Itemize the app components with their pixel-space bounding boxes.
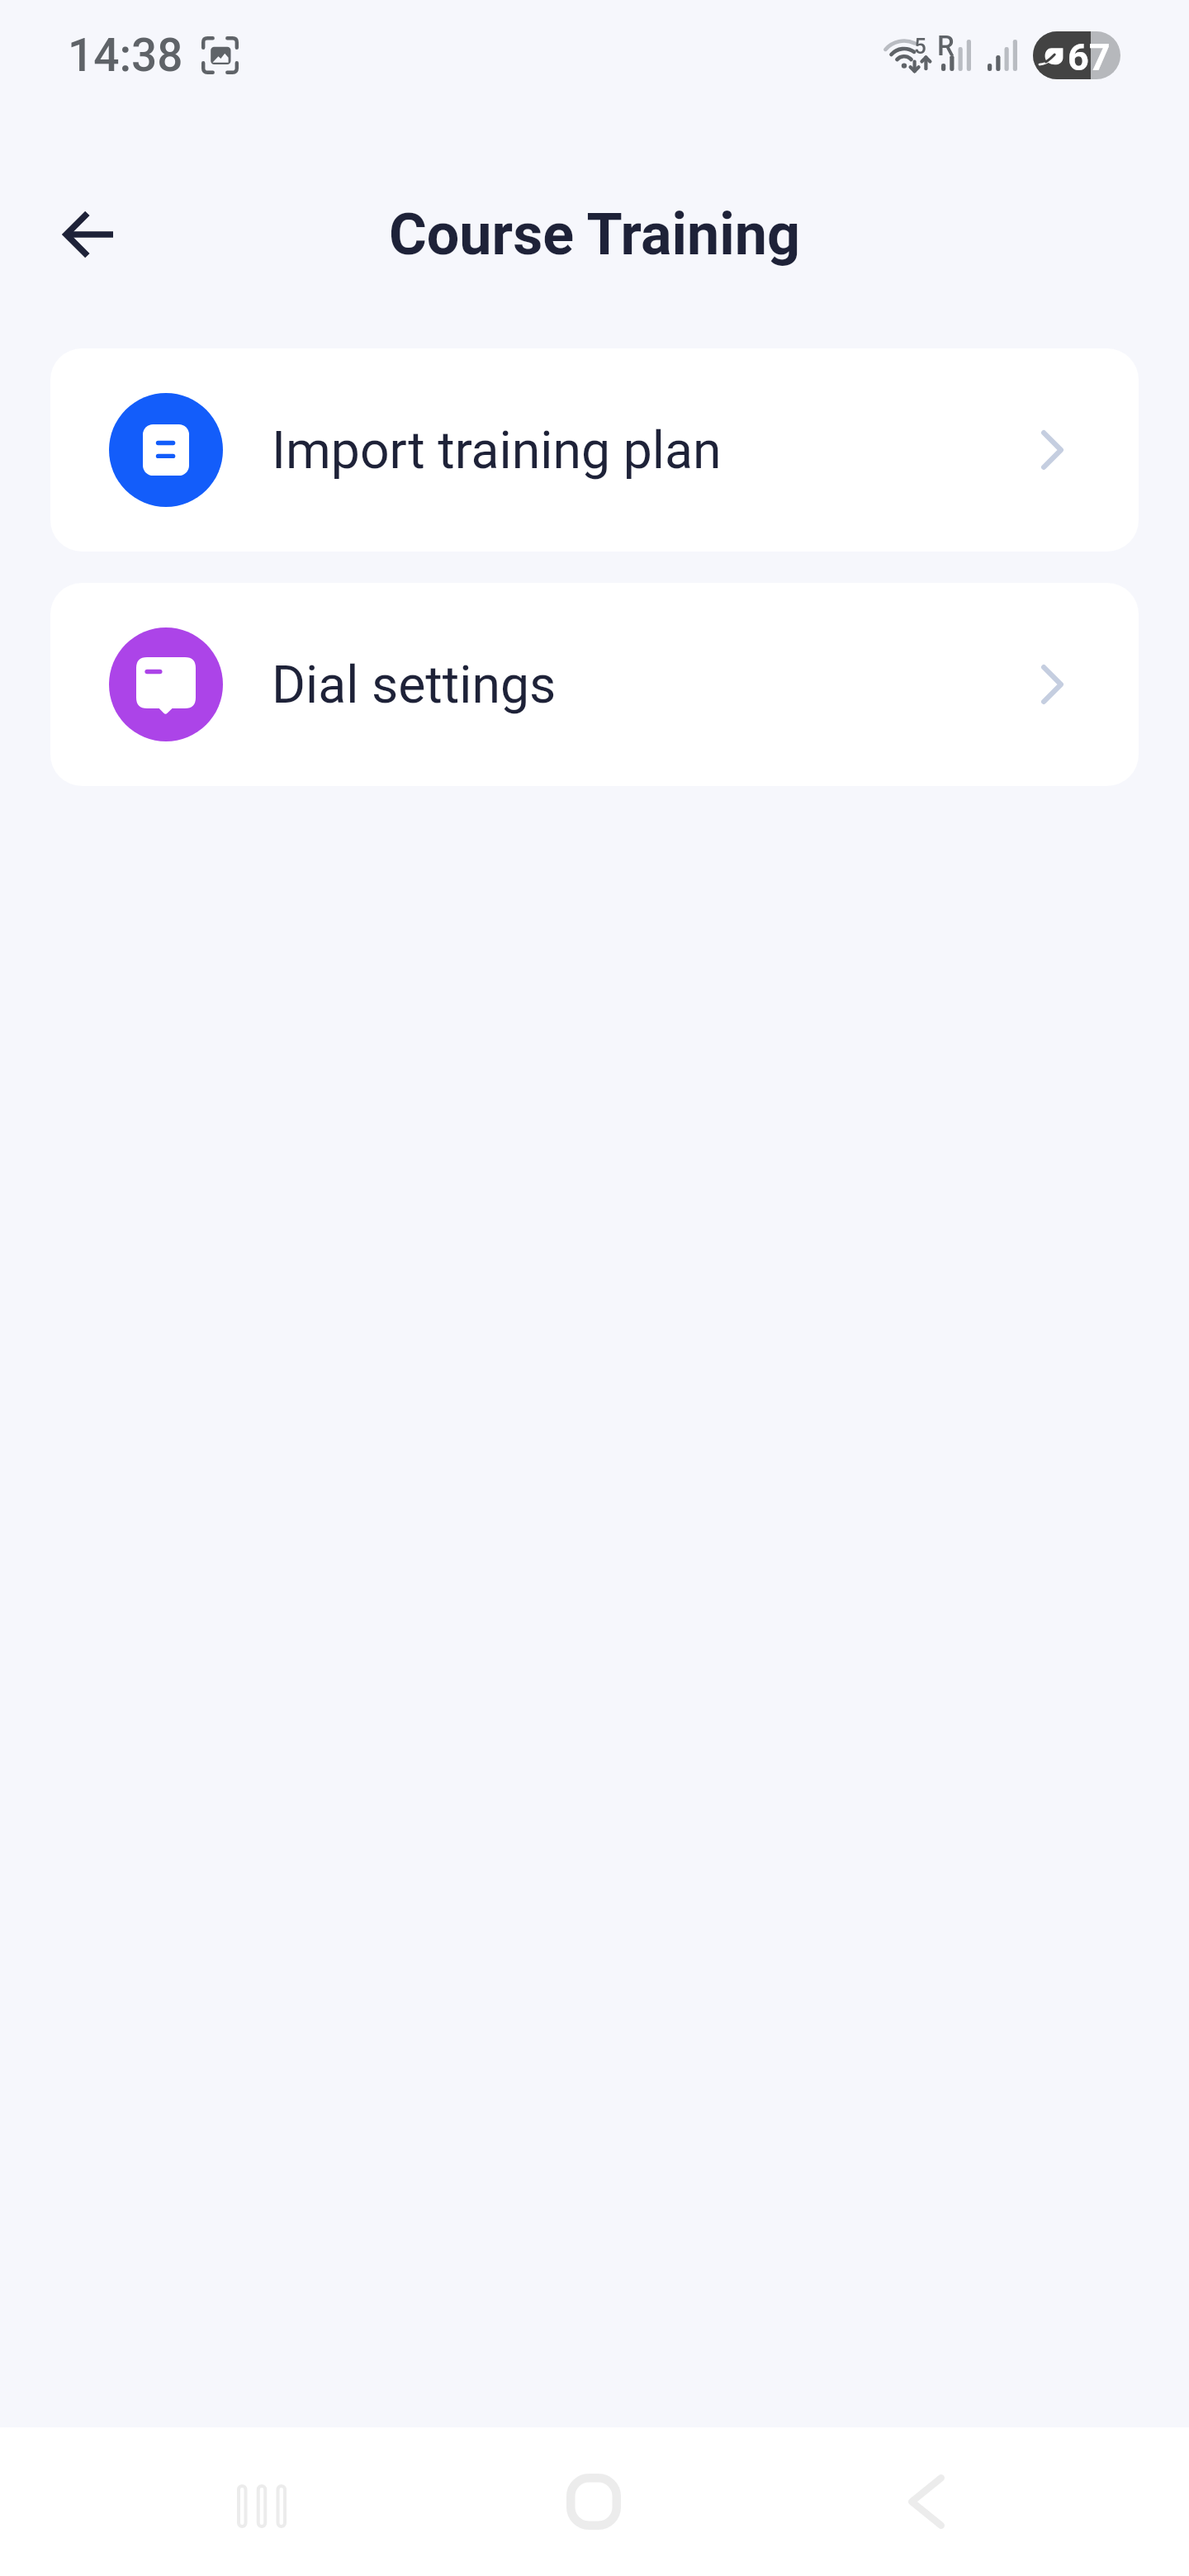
button[interactable]: Home [540,2448,647,2555]
staticText: Dial settings [272,655,557,715]
staticText: Course Training [0,201,1189,268]
staticText: 67 [1068,36,1111,79]
button[interactable]: Import training plan [50,348,1139,552]
button[interactable]: Recent apps [208,2452,315,2559]
button[interactable]: Back [873,2448,980,2555]
button[interactable]: Dial settings [50,583,1139,786]
staticText: R [937,30,955,62]
staticText: 14:38 [68,29,183,82]
button[interactable]: Back [40,187,135,282]
staticText: Import training plan [272,420,722,481]
staticText: 5 [914,34,926,59]
